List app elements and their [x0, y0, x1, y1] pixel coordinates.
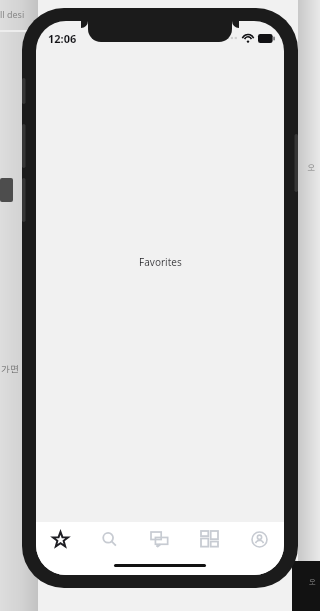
button[interactable]: Account: [234, 522, 284, 556]
staticText: ll desi: [0, 8, 25, 20]
staticText: 오: [307, 162, 315, 172]
staticText: Favorites: [139, 255, 182, 269]
staticText: 12:06: [48, 31, 77, 46]
staticText: 가면: [1, 363, 19, 374]
button[interactable]: Dashboard: [184, 522, 234, 556]
button[interactable]: Favorites: [36, 522, 85, 556]
staticText: 오: [309, 577, 316, 586]
button[interactable]: Search: [85, 522, 134, 556]
button[interactable]: Messages: [134, 522, 184, 556]
